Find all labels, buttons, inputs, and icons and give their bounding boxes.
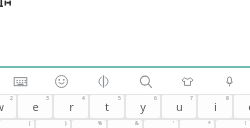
staticText: 3 — [46, 95, 49, 102]
button[interactable]: ! — [216, 120, 250, 128]
button[interactable]: Keyboard layout — [0, 68, 41, 94]
button[interactable]: Emoji — [41, 68, 82, 94]
button[interactable]: Themes — [166, 68, 208, 94]
staticText: ) — [65, 120, 67, 127]
button[interactable]: t — [90, 95, 124, 118]
staticText: t — [105, 99, 109, 114]
button[interactable]: & — [108, 120, 142, 128]
staticText: i — [214, 99, 217, 114]
button[interactable]: w — [0, 95, 16, 118]
staticText: w — [0, 99, 4, 114]
staticText: ' — [173, 120, 175, 127]
staticText: ( — [29, 120, 31, 127]
staticText: 8 — [226, 95, 229, 102]
button[interactable]: GIF — [82, 68, 124, 94]
staticText: 7 — [190, 95, 193, 102]
staticText: ! — [245, 120, 247, 127]
staticText: 2 — [10, 95, 13, 102]
staticText: 5 — [118, 95, 121, 102]
staticText: y — [140, 99, 146, 114]
button[interactable]: ) — [36, 120, 70, 128]
button[interactable]: o — [234, 95, 250, 118]
button[interactable]: i — [198, 95, 232, 118]
staticText: * — [208, 120, 211, 127]
staticText: e — [32, 99, 39, 114]
staticText: 4 — [82, 95, 85, 102]
button[interactable]: ( — [0, 120, 34, 128]
button[interactable]: Voice input — [208, 68, 250, 94]
button[interactable]: u — [162, 95, 196, 118]
button[interactable]: * — [180, 120, 214, 128]
staticText: % — [98, 120, 103, 127]
staticText: r — [69, 99, 74, 114]
button[interactable]: r — [54, 95, 88, 118]
staticText: u — [176, 99, 183, 114]
staticText: & — [135, 120, 139, 127]
staticText: o — [248, 99, 250, 114]
button[interactable]: e — [18, 95, 52, 118]
button[interactable]: y — [126, 95, 160, 118]
button[interactable]: % — [72, 120, 106, 128]
button[interactable]: Search — [124, 68, 166, 94]
button[interactable]: ' — [144, 120, 178, 128]
staticText: 6 — [154, 95, 157, 102]
